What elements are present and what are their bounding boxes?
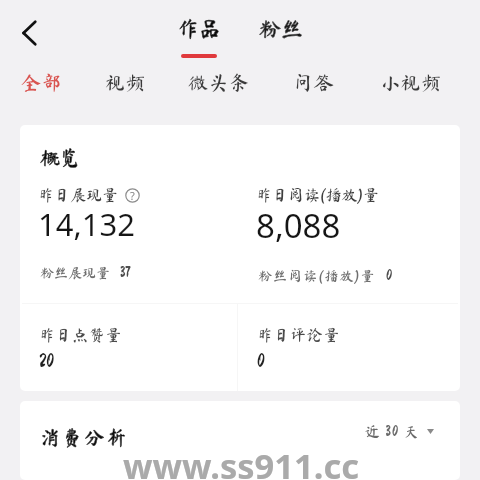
staticText: 20 <box>39 351 54 370</box>
staticText: 作品 <box>177 18 222 40</box>
staticText: 粉丝阅读(播放)量 <box>258 269 376 283</box>
staticText: 消费分析 <box>40 427 129 447</box>
button[interactable]: 作品 <box>175 18 223 58</box>
staticText: 昨日阅读(播放)量 <box>256 187 380 203</box>
staticText: 作品 <box>177 18 222 40</box>
staticText: 概览 <box>40 147 80 167</box>
button[interactable]: 全部 <box>20 67 64 97</box>
staticText: 37 <box>120 265 131 280</box>
staticText: 14,132 <box>38 203 135 245</box>
staticText: 8,088 <box>256 203 341 248</box>
button[interactable]: 粉丝 <box>257 18 305 48</box>
staticText: 昨日展现量 <box>38 187 119 203</box>
staticText: 0 <box>386 268 393 283</box>
staticText: 小视频 <box>380 72 442 92</box>
button[interactable]: 视频 <box>104 67 148 97</box>
staticText: 粉丝展现量 <box>40 266 110 280</box>
staticText: 微头条 <box>188 72 250 92</box>
staticText: 近 30 天 <box>365 424 420 439</box>
button[interactable]: 小视频 <box>378 67 444 97</box>
staticText: 视频 <box>105 72 147 92</box>
staticText: 昨日评论量 <box>257 327 341 343</box>
button[interactable]: 微头条 <box>186 67 252 97</box>
staticText: 粉丝 <box>259 18 304 40</box>
staticText: 全部 <box>21 72 63 92</box>
staticText: 消费分析 <box>40 427 129 447</box>
staticText: 0 <box>257 351 265 370</box>
staticText: 昨日点赞量 <box>39 327 123 343</box>
staticText: 粉丝 <box>259 18 304 40</box>
staticText: ? <box>130 188 135 203</box>
staticText: 概览 <box>40 147 80 167</box>
button[interactable]: 近 30 天 <box>365 418 451 444</box>
staticText: www.ss911.cc <box>123 442 360 480</box>
button[interactable]: Back <box>10 15 46 51</box>
button[interactable]: 问答 <box>292 67 336 97</box>
staticText: 问答 <box>293 72 335 92</box>
